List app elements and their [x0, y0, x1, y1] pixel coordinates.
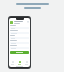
button[interactable] [10, 51, 29, 54]
button[interactable]: Add [16, 60, 23, 65]
button[interactable]: Profile [23, 60, 30, 65]
button[interactable]: Menu [27, 21, 29, 23]
other: App logo [10, 21, 13, 24]
button[interactable] [10, 37, 29, 39]
button[interactable]: App logo [10, 20, 29, 24]
button[interactable] [10, 42, 29, 44]
button[interactable] [10, 32, 29, 34]
button[interactable] [10, 47, 29, 49]
button[interactable]: Home [9, 60, 16, 65]
button[interactable] [10, 27, 29, 29]
